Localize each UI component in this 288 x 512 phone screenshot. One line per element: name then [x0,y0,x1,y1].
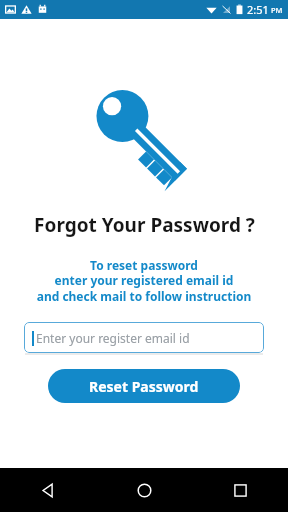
staticText: Forgot Your Password ? [34,212,255,238]
staticText: PM [271,5,283,15]
button[interactable]: Enter your register email id [24,322,264,353]
staticText: 2:51 [247,2,269,17]
button[interactable]: Recent apps [220,470,260,510]
staticText: To reset password enter your registered … [0,257,288,305]
other: Key [95,88,193,192]
button[interactable]: Reset Password [48,369,240,403]
staticText: Reset Password [89,377,199,396]
button[interactable]: Home [124,470,164,510]
button[interactable]: Back [28,470,68,510]
staticText: Enter your register email id [36,330,190,346]
